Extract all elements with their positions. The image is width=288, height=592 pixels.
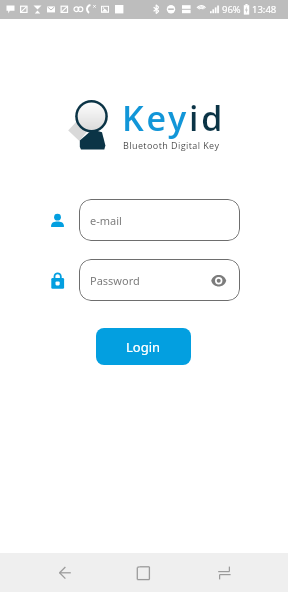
staticText: Keyid (122, 95, 226, 141)
staticText: e-mail (90, 213, 122, 228)
button[interactable]: Show password (207, 270, 231, 292)
staticText: Bluetooth Digital Key (123, 139, 220, 151)
button[interactable]: e-mail (79, 199, 240, 241)
staticText: Password (90, 273, 140, 288)
button[interactable]: Login (96, 328, 191, 365)
staticText: 13:48 (252, 3, 277, 16)
button[interactable]: Back (45, 555, 81, 591)
button[interactable]: Home (126, 555, 162, 591)
button[interactable]: Recent apps (207, 555, 243, 591)
button[interactable]: Password (79, 259, 240, 301)
staticText: 96% (222, 3, 241, 16)
staticText: Login (126, 338, 161, 356)
